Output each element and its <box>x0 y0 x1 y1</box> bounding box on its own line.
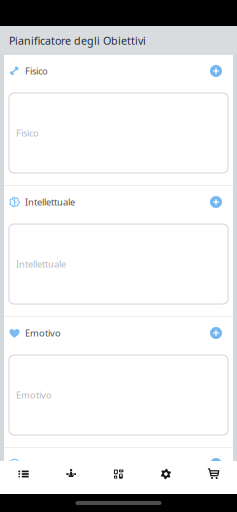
staticText: Fisico <box>16 127 39 139</box>
button[interactable]: Meditazione <box>47 461 95 494</box>
button[interactable]: Negozio <box>190 461 237 494</box>
button[interactable]: Obiettivi <box>0 461 47 494</box>
button[interactable]: Aggiungi obiettivo Carattere <box>210 458 222 470</box>
staticText: Intellettuale <box>25 196 75 208</box>
staticText: Pianificatore degli Obiettivi <box>9 33 146 48</box>
button[interactable]: Aggiungi obiettivo Intellettuale <box>210 196 222 208</box>
button[interactable]: Dashboard <box>95 461 142 494</box>
staticText: Emotivo <box>25 327 61 339</box>
button[interactable]: Aggiungi obiettivo Fisico <box>210 65 222 77</box>
staticText: Intellettuale <box>16 258 66 270</box>
button[interactable]: Impostazioni <box>142 461 190 494</box>
staticText: Fisico <box>25 65 48 77</box>
staticText: Emotivo <box>16 389 52 401</box>
button[interactable]: Aggiungi obiettivo Emotivo <box>210 327 222 339</box>
